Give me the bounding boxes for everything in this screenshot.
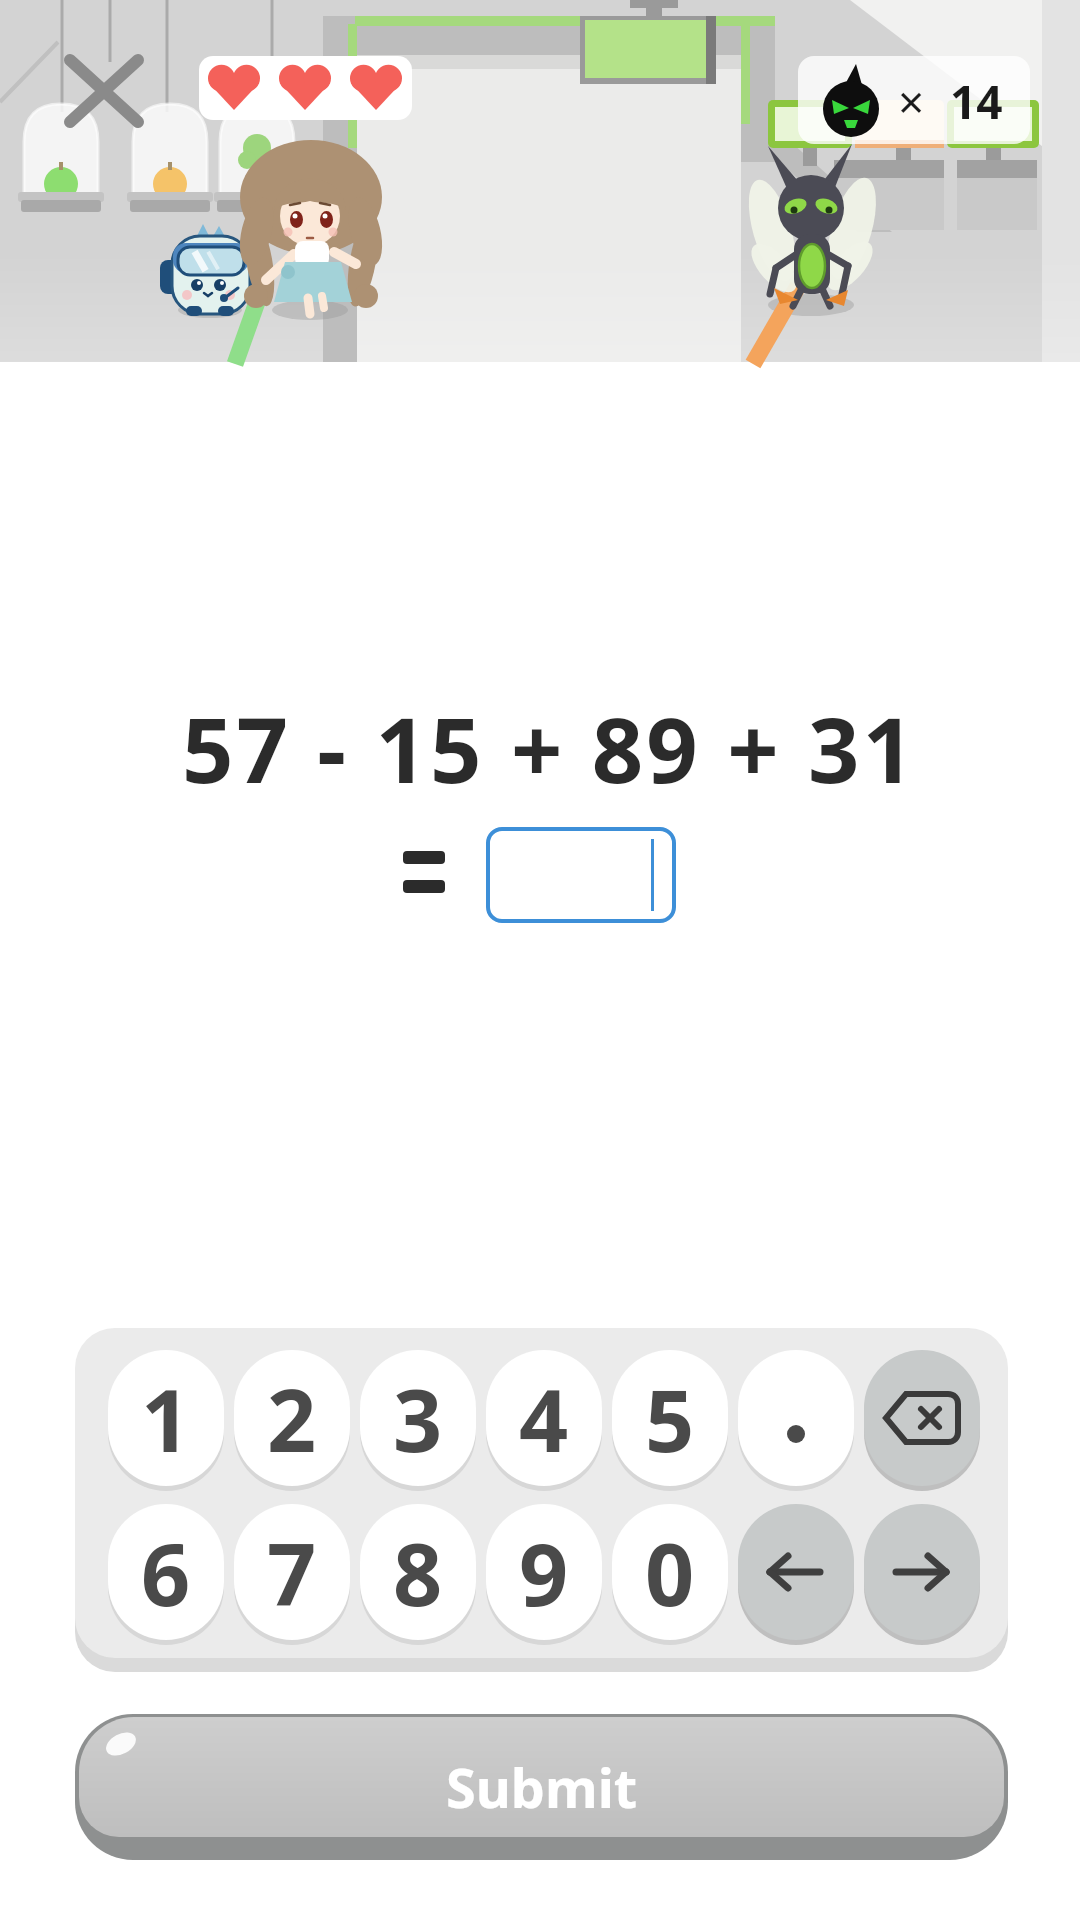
staticText: 1 xyxy=(141,1360,191,1477)
button[interactable] xyxy=(486,827,676,923)
staticText: 8 xyxy=(393,1514,443,1631)
button[interactable]: 8 xyxy=(360,1504,476,1640)
button[interactable]: 3 xyxy=(360,1350,476,1486)
staticText: Submit xyxy=(446,1750,638,1824)
staticText: 5 xyxy=(645,1360,695,1477)
staticText: 14 xyxy=(950,70,1003,133)
button[interactable]: 0 xyxy=(612,1504,728,1640)
button[interactable] xyxy=(60,50,146,130)
button[interactable]: Submit xyxy=(75,1714,1008,1860)
staticText: 6 xyxy=(141,1514,191,1631)
button[interactable] xyxy=(864,1350,980,1486)
staticText: 9 xyxy=(519,1514,569,1631)
button[interactable] xyxy=(738,1350,854,1486)
staticText: 4 xyxy=(519,1360,569,1477)
button[interactable]: 6 xyxy=(108,1504,224,1640)
staticText: 3 xyxy=(393,1360,443,1477)
staticText: × xyxy=(898,70,925,133)
button[interactable] xyxy=(738,1504,854,1640)
staticText: 7 xyxy=(267,1514,317,1631)
button[interactable]: 4 xyxy=(486,1350,602,1486)
staticText: 0 xyxy=(645,1514,695,1631)
button[interactable]: 9 xyxy=(486,1504,602,1640)
button[interactable]: 1 xyxy=(108,1350,224,1486)
button[interactable]: 2 xyxy=(234,1350,350,1486)
button[interactable]: 7 xyxy=(234,1504,350,1640)
button[interactable] xyxy=(864,1504,980,1640)
staticText: 2 xyxy=(267,1360,317,1477)
staticText: 57 - 15 + 89 + 31 xyxy=(182,687,917,810)
button[interactable]: 5 xyxy=(612,1350,728,1486)
